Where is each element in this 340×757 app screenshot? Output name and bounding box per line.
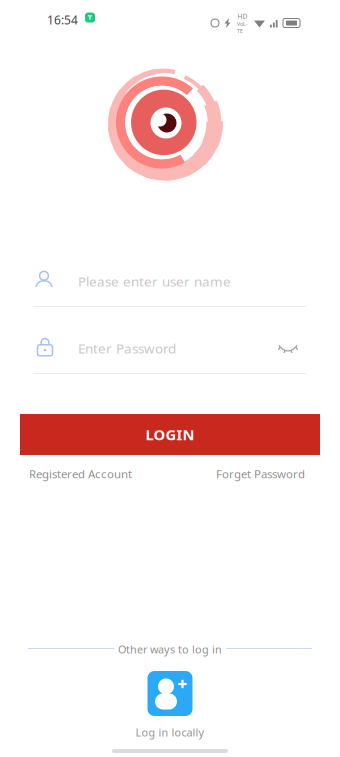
button[interactable]: Registered Account — [27, 463, 134, 485]
button[interactable]: Forget Password — [214, 463, 307, 485]
staticText: Registered Account — [29, 466, 132, 482]
staticText: Other ways to log in — [118, 642, 222, 657]
staticText: VoLTE — [237, 21, 248, 34]
staticText: HD — [237, 12, 247, 21]
staticText: Please enter user name — [78, 272, 231, 290]
button[interactable]: Show password — [271, 333, 305, 363]
button[interactable]: Log in locally — [125, 671, 215, 740]
staticText: Log in locally — [135, 725, 204, 740]
staticText: Forget Password — [216, 466, 305, 482]
staticText: LOGIN — [145, 424, 194, 445]
staticText: Enter Password — [78, 339, 176, 357]
button[interactable]: LOGIN — [20, 414, 320, 455]
staticText: 16:54 — [47, 12, 78, 28]
